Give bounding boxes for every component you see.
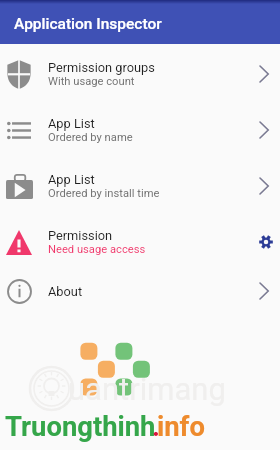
button[interactable]: About <box>0 270 280 312</box>
staticText: . <box>152 411 160 443</box>
staticText: Ordered by install time <box>48 187 160 200</box>
staticText: Application Inspector <box>14 15 162 33</box>
staticText: Ordered by name <box>48 131 133 144</box>
button[interactable]: App List <box>0 158 280 214</box>
other: Open <box>259 66 269 82</box>
staticText: App List <box>48 116 95 131</box>
staticText: Need usage access <box>48 243 146 256</box>
button[interactable]: App List <box>0 102 280 158</box>
staticText: uantrimang <box>68 371 226 407</box>
other: Open <box>259 283 269 299</box>
staticText: Truongthinh <box>5 411 156 443</box>
staticText: Permission groups <box>48 60 155 75</box>
staticText: info <box>157 411 205 443</box>
button[interactable]: Permission <box>0 214 280 270</box>
other: Open <box>259 178 269 194</box>
staticText: About <box>48 284 83 299</box>
staticText: With usage count <box>48 75 135 88</box>
staticText: Permission <box>48 228 113 243</box>
staticText: App List <box>48 172 95 187</box>
button[interactable]: Settings <box>253 229 279 255</box>
button[interactable]: Permission groups <box>0 46 280 102</box>
other: Open <box>259 122 269 138</box>
